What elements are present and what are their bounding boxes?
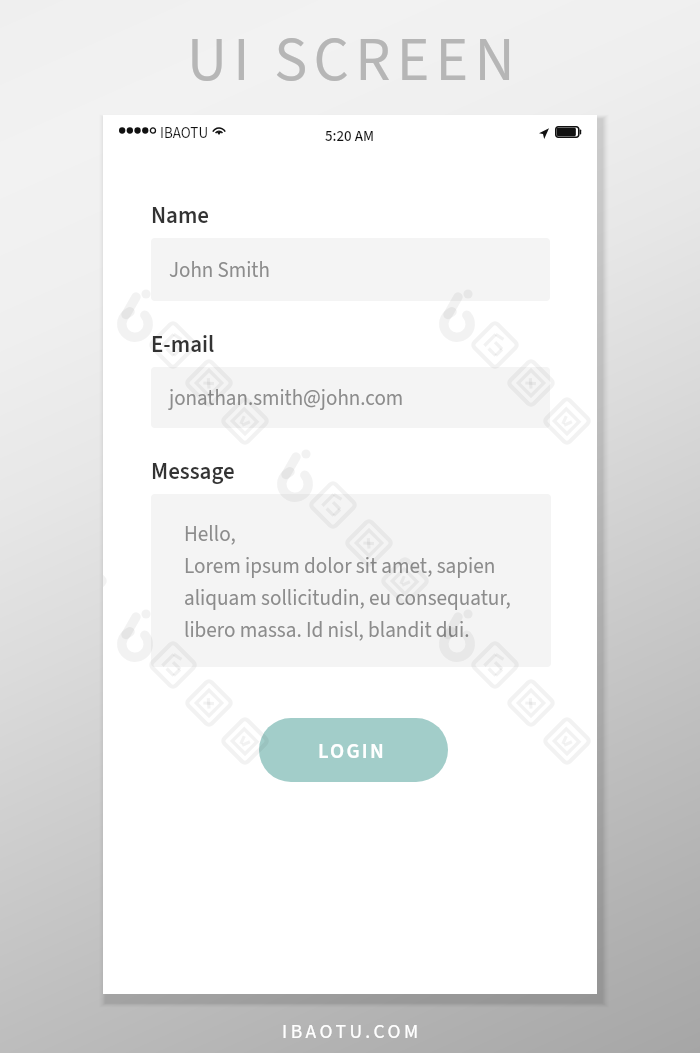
staticText: Message [151, 455, 235, 488]
staticText: jonathan.smith@john.com [169, 383, 404, 413]
other: Battery [555, 126, 581, 138]
staticText: E-mail [151, 328, 215, 361]
staticText: Name [151, 199, 210, 232]
button[interactable]: LOGIN [259, 718, 448, 782]
button[interactable]: Hello, Lorem ipsum dolor sit amet, sapie… [151, 494, 551, 667]
staticText: 5:20 AM [325, 126, 374, 147]
staticText: IBAOTU [160, 123, 209, 144]
staticText: LOGIN [318, 736, 386, 766]
staticText: UI SCREEN [187, 17, 521, 105]
staticText: Hello, Lorem ipsum dolor sit amet, sapie… [184, 519, 511, 645]
other: Location [539, 128, 549, 139]
staticText: John Smith [169, 255, 270, 285]
button[interactable]: jonathan.smith@john.com [151, 367, 550, 428]
button[interactable]: John Smith [151, 238, 550, 301]
staticText: IBAOTU.COM [282, 1018, 422, 1046]
other: Wifi [212, 124, 226, 135]
